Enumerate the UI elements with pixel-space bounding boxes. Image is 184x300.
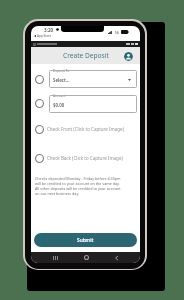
staticText: Check Back (Click to Capture Image): [47, 155, 123, 161]
staticText: Submit: [77, 237, 94, 244]
staticText: will be credited to your account on the …: [35, 181, 120, 186]
button[interactable]: Check Front (Click to Capture Image): [47, 126, 124, 132]
button[interactable]: Submit: [34, 233, 137, 247]
button[interactable]: Deposit To: [49, 70, 137, 88]
button[interactable]: Back: [111, 252, 121, 263]
staticText: $0.00: [53, 102, 65, 108]
button[interactable]: Recent apps: [50, 252, 60, 263]
button[interactable]: Check Back (Click to Capture Image): [47, 155, 123, 161]
staticText: Checks deposited Monday - Friday before …: [35, 176, 121, 181]
staticText: on our next business day.: [35, 191, 80, 196]
staticText: Select...: [53, 77, 70, 83]
staticText: Check Front (Click to Capture Image): [47, 126, 124, 132]
staticText: All other deposits will be credited to y…: [35, 186, 121, 191]
button[interactable]: Account: [124, 52, 133, 61]
button[interactable]: Home: [81, 252, 91, 263]
staticText: Amount: [53, 93, 66, 97]
staticText: 56: [115, 30, 119, 34]
button[interactable]: Amount: [49, 95, 137, 113]
staticText: App Store: [37, 34, 52, 38]
staticText: 3:20: [44, 27, 54, 33]
staticText: Create Deposit: [63, 51, 109, 60]
staticText: Deposit To: [53, 68, 70, 72]
